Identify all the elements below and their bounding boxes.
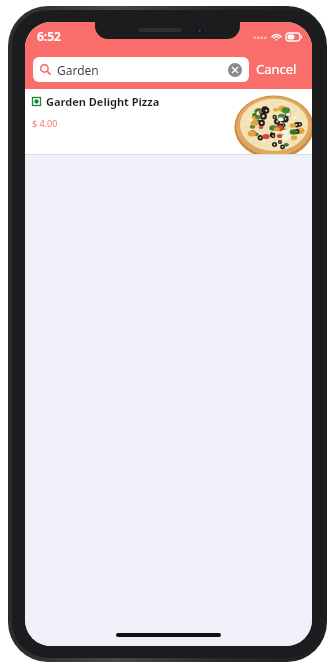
button[interactable]: Clear search xyxy=(228,63,242,77)
staticText: 6:52 xyxy=(37,28,61,44)
button[interactable]: Cancel xyxy=(249,56,304,82)
button[interactable]: Garden Delight Pizza xyxy=(25,89,312,155)
staticText: Cancel xyxy=(256,60,297,78)
button[interactable]: Garden xyxy=(33,57,249,82)
staticText: Garden xyxy=(57,62,228,78)
staticText: Garden Delight Pizza xyxy=(46,94,160,109)
staticText: $ 4.00 xyxy=(32,117,58,129)
